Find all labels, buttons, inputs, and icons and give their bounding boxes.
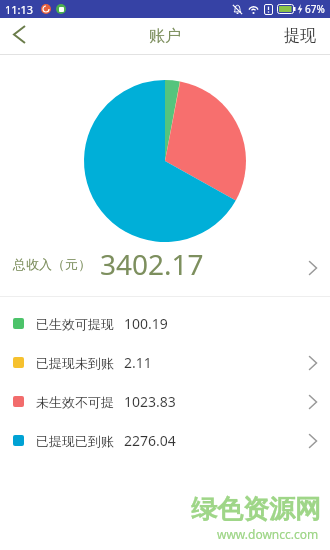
button[interactable]: 已提现已到账	[0, 421, 330, 460]
staticText: 67%	[305, 2, 325, 16]
staticText: 3402.17	[100, 245, 204, 283]
button[interactable]: 未生效不可提	[0, 382, 330, 421]
button[interactable]	[7, 22, 31, 46]
staticText: 2276.04	[124, 431, 176, 450]
staticText: 已提现已到账	[36, 433, 114, 449]
staticText: 已生效可提现	[36, 316, 114, 332]
staticText: 2.11	[124, 353, 152, 372]
staticText: 1023.83	[124, 392, 176, 411]
staticText: 11:13	[5, 2, 34, 17]
staticText: 未生效不可提	[36, 394, 114, 410]
staticText: 已提现未到账	[36, 355, 114, 371]
button[interactable]: 已生效可提现	[0, 304, 330, 343]
button[interactable]: 已提现未到账	[0, 343, 330, 382]
staticText: www.downcc.com	[217, 526, 319, 542]
button[interactable]: 提现	[284, 26, 330, 46]
staticText: 绿色资源网	[191, 493, 321, 526]
staticText: 提现	[284, 26, 316, 46]
button[interactable]: 总收入（元）	[0, 242, 330, 286]
staticText: 账户	[149, 26, 181, 46]
staticText: 100.19	[124, 314, 168, 333]
staticText: 总收入（元）	[13, 256, 91, 272]
